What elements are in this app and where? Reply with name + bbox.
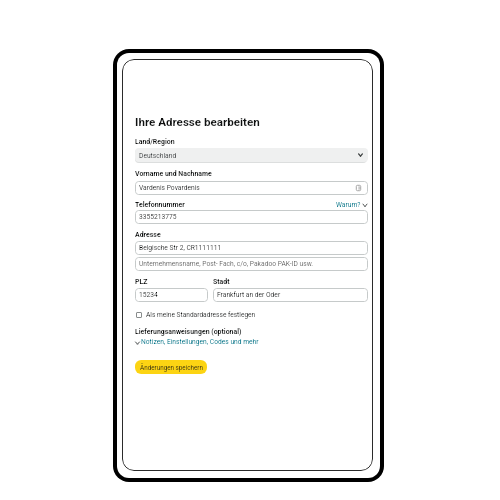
staticText: Telefonnummer bbox=[135, 201, 185, 209]
staticText: Frankfurt an der Oder bbox=[217, 291, 281, 299]
other: Autofill name bbox=[356, 185, 361, 191]
button[interactable]: Deutschland bbox=[135, 148, 368, 162]
staticText: 3355213775 bbox=[139, 213, 177, 221]
staticText: Warum? bbox=[336, 201, 361, 209]
button[interactable]: Notizen, Einstellungen, Codes und mehr bbox=[135, 338, 259, 346]
staticText: Deutschland bbox=[139, 152, 177, 160]
button[interactable]: Änderungen speichern bbox=[135, 360, 207, 374]
button[interactable]: 15234 bbox=[135, 288, 208, 302]
staticText: Vardenis Povardenis bbox=[139, 184, 200, 192]
staticText: Vorname und Nachname bbox=[135, 170, 212, 178]
button[interactable]: Belgische Str 2, CR1111111 bbox=[135, 241, 368, 255]
staticText: Als meine Standardadresse festlegen bbox=[146, 311, 256, 319]
staticText: Stadt bbox=[213, 278, 230, 286]
staticText: 15234 bbox=[139, 291, 158, 299]
staticText: Belgische Str 2, CR1111111 bbox=[139, 244, 222, 252]
button[interactable]: Unternehmensname, Post- Fach, c/o, Pakad… bbox=[135, 257, 368, 271]
staticText: Land/Region bbox=[135, 138, 175, 146]
button[interactable]: Frankfurt an der Oder bbox=[213, 288, 368, 302]
button[interactable]: Warum? bbox=[330, 201, 367, 209]
staticText: Änderungen speichern bbox=[140, 364, 203, 371]
staticText: Lieferungsanweisungen (optional) bbox=[135, 328, 242, 336]
button[interactable]: Als meine Standardadresse festlegen bbox=[136, 311, 256, 319]
staticText: Notizen, Einstellungen, Codes und mehr bbox=[141, 338, 259, 346]
staticText: PLZ bbox=[135, 278, 148, 286]
button[interactable]: 3355213775 bbox=[135, 210, 368, 224]
staticText: Unternehmensname, Post- Fach, c/o, Pakad… bbox=[139, 260, 314, 268]
staticText: Ihre Adresse bearbeiten bbox=[135, 115, 260, 129]
button[interactable]: Vardenis Povardenis bbox=[135, 181, 368, 195]
staticText: Adresse bbox=[135, 231, 161, 239]
